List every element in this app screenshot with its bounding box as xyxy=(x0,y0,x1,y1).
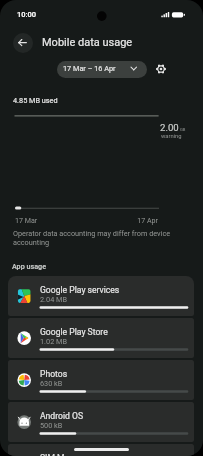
button[interactable]: Android OS xyxy=(8,402,194,442)
staticText: 17 Mar – 16 Apr xyxy=(63,64,116,73)
staticText: 2.00 xyxy=(160,122,179,133)
staticText: Google Play Store xyxy=(40,327,108,337)
button[interactable] xyxy=(57,61,147,78)
button[interactable]: Google Play services xyxy=(8,276,194,316)
staticText: 10:00 xyxy=(17,10,37,19)
staticText: Operator data accounting may differ from… xyxy=(13,229,185,247)
staticText: Mobile data usage xyxy=(42,36,133,49)
staticText: App usage xyxy=(12,262,47,270)
staticText: 1.02 MB xyxy=(40,337,67,346)
button[interactable]: SIM Messages xyxy=(8,444,194,456)
staticText: GB xyxy=(180,127,186,132)
staticText: 17 Mar xyxy=(15,216,38,224)
staticText: 4.85 MB used xyxy=(13,96,58,105)
button[interactable]: Settings xyxy=(151,59,171,79)
staticText: 500 kB xyxy=(40,421,63,430)
button[interactable]: Photos xyxy=(8,360,194,400)
button[interactable]: Back xyxy=(13,33,33,53)
staticText: 17 Apr xyxy=(100,216,158,224)
staticText: Google Play services xyxy=(40,285,120,295)
staticText: warning xyxy=(161,133,182,140)
staticText: SIM Messages xyxy=(40,453,97,456)
staticText: 2.04 MB xyxy=(40,295,67,304)
staticText: Photos xyxy=(40,369,68,379)
staticText: 630 kB xyxy=(40,379,63,388)
staticText: Android OS xyxy=(40,411,84,421)
button[interactable]: Google Play Store xyxy=(8,318,194,358)
